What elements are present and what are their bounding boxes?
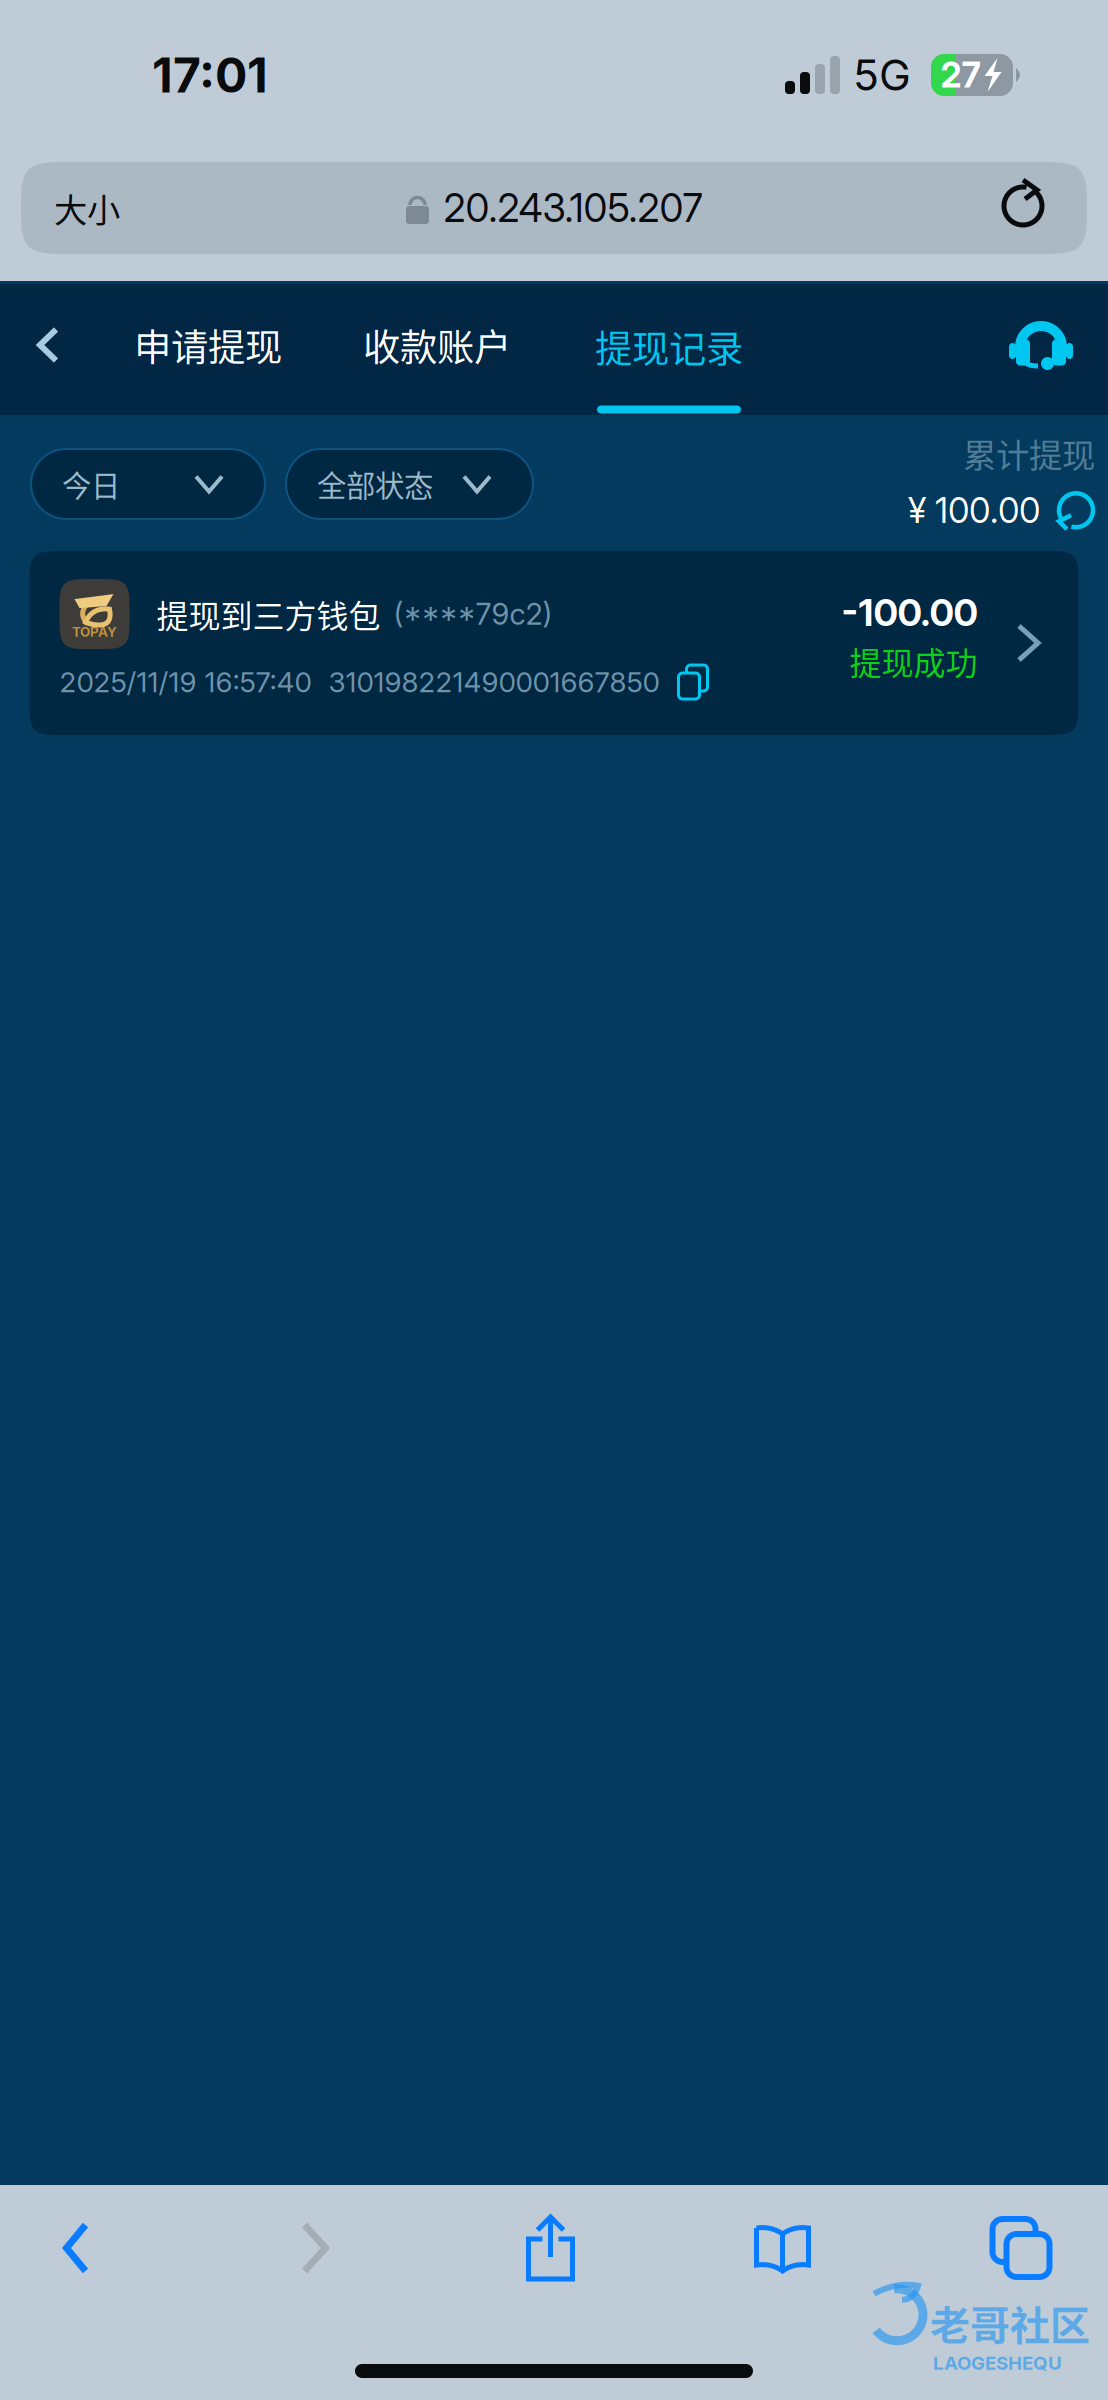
staticText: 提现记录 (595, 319, 743, 374)
staticText: 今日 (62, 463, 120, 505)
staticText: 2025/11/19 16:57:40 (59, 665, 311, 699)
button[interactable]: 大小 (21, 162, 140, 254)
staticText: 27 (940, 54, 980, 96)
staticText: TOPAY (72, 624, 117, 640)
staticText: 全部状态 (317, 463, 433, 505)
button[interactable]: Forward (152, 2185, 478, 2311)
button[interactable]: Share (478, 2185, 623, 2311)
staticText: 收款账户 (363, 318, 511, 372)
button[interactable]: Tabs (942, 2185, 1100, 2311)
staticText: 老哥社区 (930, 2294, 1090, 2352)
button[interactable]: 今日 (31, 449, 265, 519)
button[interactable]: 全部状态 (286, 449, 533, 519)
staticText: 20.243.105.207 (443, 185, 702, 231)
staticText: 大小 (54, 184, 120, 232)
staticText: LAOGESHEQU (933, 2352, 1062, 2374)
staticText: 累计提现 (963, 429, 1095, 477)
button[interactable]: Back (0, 278, 135, 412)
staticText: -100.00 (841, 590, 977, 635)
button[interactable]: Reload (979, 162, 1087, 254)
button[interactable]: 收款账户 (281, 278, 510, 412)
button[interactable]: Customer service (991, 278, 1091, 412)
staticText: ¥ 100.00 (908, 489, 1040, 531)
button[interactable]: Back (0, 2185, 152, 2311)
staticText: (****79c2) (393, 596, 552, 632)
staticText: 310198221490001667850 (328, 665, 659, 699)
staticText: 提现到三方钱包 (156, 591, 380, 637)
staticText: 5G (853, 49, 911, 101)
staticText: 17:01 (152, 46, 268, 104)
staticText: 提现成功 (849, 638, 977, 684)
button[interactable]: 申请提现 (135, 278, 281, 412)
button[interactable]: 提现记录 (510, 278, 742, 412)
staticText: 申请提现 (134, 318, 282, 372)
button[interactable]: TOPAY (29, 551, 1078, 735)
button[interactable]: Bookmarks (623, 2185, 942, 2311)
